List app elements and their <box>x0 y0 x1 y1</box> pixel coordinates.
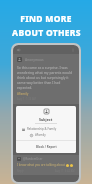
staticText: #Family <box>35 133 46 137</box>
button[interactable]: @RandomUser <box>17 157 75 173</box>
button[interactable]: Block / Report <box>32 144 61 150</box>
staticText: #Family <box>17 92 29 96</box>
staticText: @RandomUser <box>23 157 43 161</box>
staticText: Block / Report <box>36 145 57 149</box>
staticText: ABOUT OTHERS <box>12 27 81 39</box>
staticText: Anonymous <box>25 58 44 62</box>
staticText: FIND MORE <box>20 13 72 25</box>
button[interactable]: Anonymous <box>17 57 75 101</box>
button[interactable]: Relationship & Family <box>22 127 70 131</box>
staticText: Relationship & Family <box>27 127 57 131</box>
staticText: Subject <box>39 117 53 122</box>
button[interactable]: #Family <box>22 133 70 137</box>
button[interactable]: Back <box>16 47 22 53</box>
staticText: So this came as a surprise. I was wonder… <box>17 65 75 90</box>
staticText: I know what you are talking about <box>17 163 66 167</box>
